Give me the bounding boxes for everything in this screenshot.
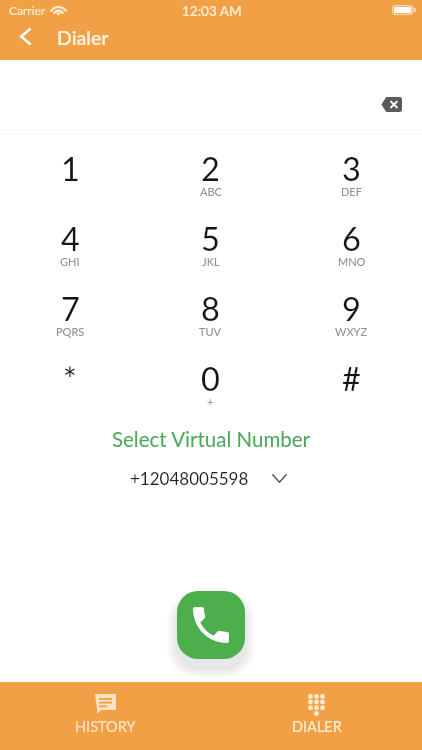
button[interactable]: Back bbox=[10, 21, 40, 51]
staticText: TUV bbox=[199, 325, 222, 338]
staticText: * bbox=[63, 359, 77, 398]
button[interactable]: # bbox=[281, 349, 422, 419]
button[interactable]: Call bbox=[177, 591, 245, 659]
staticText: 0 bbox=[201, 359, 220, 398]
staticText: 2 bbox=[201, 149, 220, 188]
staticText: DEF bbox=[341, 185, 362, 198]
staticText: 9 bbox=[342, 289, 361, 328]
staticText: # bbox=[342, 359, 361, 398]
button[interactable]: 5 bbox=[140, 209, 281, 279]
button[interactable]: 8 bbox=[140, 279, 281, 349]
staticText: PQRS bbox=[56, 325, 85, 338]
staticText: 5 bbox=[201, 219, 220, 258]
staticText: 12:03 AM bbox=[182, 3, 242, 19]
staticText: GHI bbox=[60, 255, 80, 268]
staticText: MNO bbox=[338, 255, 366, 268]
button[interactable]: DIALER bbox=[211, 682, 422, 750]
staticText: 7 bbox=[61, 289, 80, 328]
staticText: 1 bbox=[61, 149, 80, 188]
button[interactable]: +12048005598 bbox=[0, 465, 419, 491]
button[interactable]: 2 bbox=[140, 139, 281, 209]
button[interactable]: 9 bbox=[281, 279, 422, 349]
staticText: Carrier bbox=[9, 3, 46, 17]
button[interactable]: * bbox=[0, 349, 140, 419]
staticText: 3 bbox=[342, 149, 361, 188]
staticText: DIALER bbox=[292, 718, 342, 735]
staticText: +12048005598 bbox=[130, 468, 249, 488]
staticText: WXYZ bbox=[335, 325, 368, 338]
staticText: Dialer bbox=[57, 26, 109, 49]
button[interactable]: 7 bbox=[0, 279, 140, 349]
staticText: JKL bbox=[202, 255, 220, 268]
button[interactable]: 1 bbox=[0, 139, 140, 209]
button[interactable]: 4 bbox=[0, 209, 140, 279]
button[interactable]: 3 bbox=[281, 139, 422, 209]
button[interactable]: HISTORY bbox=[0, 682, 211, 750]
button[interactable]: Backspace bbox=[372, 86, 410, 122]
staticText: Select Virtual Number bbox=[0, 427, 422, 452]
button[interactable]: 0 bbox=[140, 349, 281, 419]
staticText: 6 bbox=[342, 219, 361, 258]
staticText: HISTORY bbox=[75, 718, 136, 735]
staticText: ABC bbox=[200, 185, 222, 198]
button[interactable]: 6 bbox=[281, 209, 422, 279]
staticText: 4 bbox=[61, 219, 80, 258]
staticText: + bbox=[207, 395, 214, 408]
staticText: 8 bbox=[201, 289, 220, 328]
